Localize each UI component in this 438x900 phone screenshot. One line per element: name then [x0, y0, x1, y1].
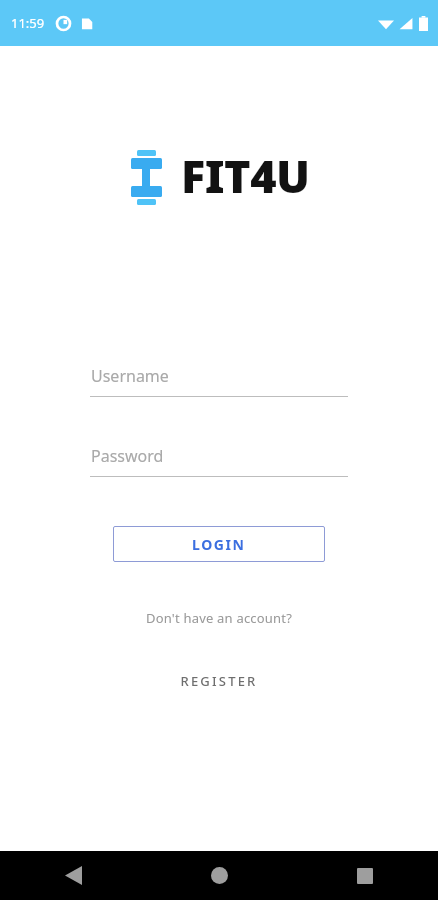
button[interactable]: Recent apps: [292, 851, 438, 900]
staticText: LOGIN: [192, 535, 246, 554]
staticText: FIT4U: [181, 145, 310, 206]
button[interactable]: REGISTER: [0, 666, 438, 696]
staticText: REGISTER: [0, 672, 438, 690]
button[interactable]: Back: [0, 851, 146, 900]
staticText: Username: [91, 365, 169, 387]
button[interactable]: Home: [146, 851, 292, 900]
staticText: Don't have an account?: [0, 609, 438, 627]
staticText: 11:59: [11, 14, 45, 32]
button[interactable]: Password: [90, 445, 348, 477]
button[interactable]: LOGIN: [113, 526, 325, 562]
staticText: Password: [91, 445, 164, 467]
button[interactable]: Username: [90, 365, 348, 397]
